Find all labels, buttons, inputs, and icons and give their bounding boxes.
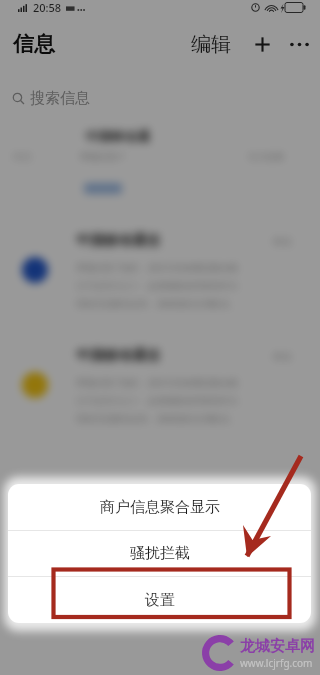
staticText: 中国移动通 <box>85 128 150 144</box>
staticText: 信息 <box>13 31 55 57</box>
button[interactable]: More options <box>287 32 311 56</box>
staticText: 商户信息聚合显示 <box>100 498 220 517</box>
button[interactable]: 中国移动通信 <box>22 232 306 333</box>
button[interactable]: 编辑 <box>191 32 231 57</box>
staticText: 搜索信息 <box>30 89 90 108</box>
staticText: 骚扰拦截 <box>130 544 190 563</box>
button[interactable]: 商户信息聚合显示 <box>8 484 311 530</box>
button[interactable]: 骚扰拦截 <box>8 531 311 576</box>
button[interactable]: New message <box>250 32 274 56</box>
button[interactable]: 搜索信息 <box>12 83 308 113</box>
staticText: 中国移动通信 <box>76 232 160 250</box>
button[interactable]: 设置 <box>8 577 311 623</box>
button[interactable]: 中国移动通信 <box>22 347 306 448</box>
staticText: 龙城安卓网 <box>240 637 315 656</box>
staticText: www.lcjrfg.com <box>240 656 313 670</box>
staticText: 20:58 <box>33 0 62 15</box>
staticText: 中国移动通信 <box>76 347 160 365</box>
staticText: 设置 <box>145 591 175 610</box>
